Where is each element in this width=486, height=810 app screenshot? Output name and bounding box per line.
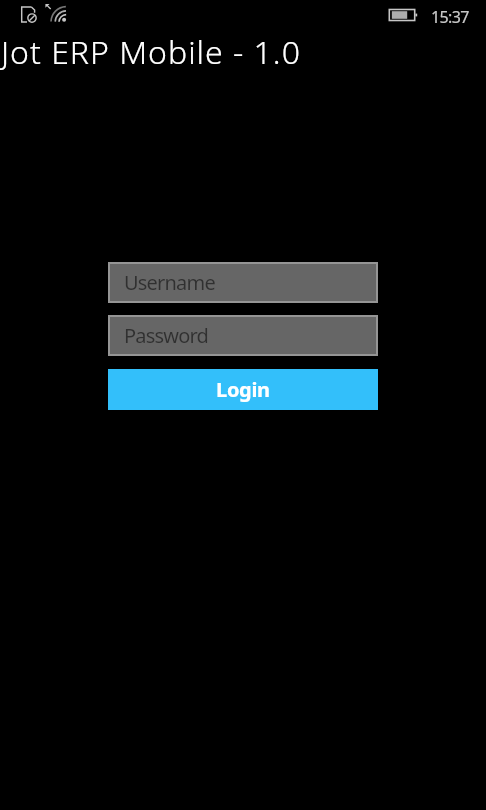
button[interactable]: Password (110, 317, 376, 354)
button[interactable]: Login (108, 369, 378, 410)
button[interactable]: Username (110, 264, 376, 301)
staticText: Password (124, 322, 209, 349)
other: Wi-Fi connected (45, 3, 71, 27)
staticText: Username (124, 269, 215, 296)
other: No SIM card (20, 5, 40, 27)
staticText: 15:37 (431, 6, 469, 28)
staticText: Login (216, 376, 270, 403)
other: Battery (387, 7, 419, 23)
staticText: Jot ERP Mobile - 1.0 (1, 30, 301, 74)
